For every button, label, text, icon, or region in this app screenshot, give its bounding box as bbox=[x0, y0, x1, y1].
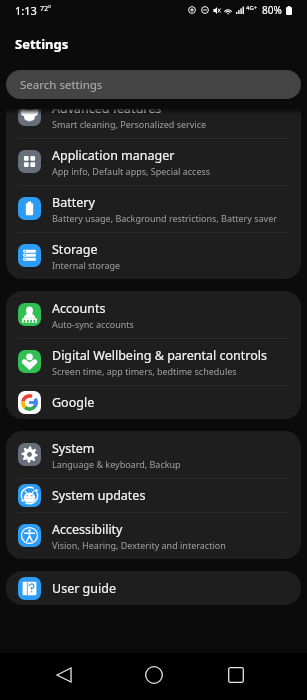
staticText: 4G+ bbox=[246, 4, 258, 12]
button[interactable]: Application manager bbox=[6, 138, 301, 185]
button[interactable]: Google bbox=[6, 385, 301, 419]
staticText: Digital Wellbeing & parental controls bbox=[52, 347, 268, 364]
staticText: Battery usage, Background restrictions, … bbox=[52, 212, 277, 224]
button[interactable]: Recent apps bbox=[214, 653, 258, 697]
staticText: Advanced features bbox=[52, 109, 162, 117]
button[interactable]: User guide bbox=[6, 571, 301, 605]
staticText: System updates bbox=[52, 487, 146, 504]
button[interactable]: Home bbox=[132, 653, 176, 697]
button[interactable]: Search settings bbox=[6, 70, 301, 99]
staticText: 80% bbox=[262, 3, 282, 17]
staticText: App info, Default apps, Special access bbox=[52, 165, 211, 177]
button[interactable]: Battery bbox=[6, 185, 301, 232]
button[interactable]: System bbox=[6, 431, 301, 478]
button[interactable]: Advanced features bbox=[6, 109, 301, 138]
staticText: Internal storage bbox=[52, 259, 121, 271]
staticText: Accounts bbox=[52, 300, 106, 317]
button[interactable]: Accessibility bbox=[6, 512, 301, 559]
staticText: Settings bbox=[15, 35, 69, 53]
staticText: 72° bbox=[40, 4, 52, 14]
staticText: 1:13 bbox=[15, 3, 37, 18]
staticText: Application manager bbox=[52, 147, 175, 164]
staticText: Auto-sync accounts bbox=[52, 318, 134, 330]
staticText: User guide bbox=[52, 580, 116, 597]
staticText: Search settings bbox=[20, 77, 103, 93]
button[interactable]: Storage bbox=[6, 232, 301, 279]
staticText: Storage bbox=[52, 241, 98, 258]
staticText: Language & keyboard, Backup bbox=[52, 458, 181, 470]
staticText: System bbox=[52, 440, 95, 457]
staticText: Vision, Hearing, Dexterity and interacti… bbox=[52, 539, 226, 551]
button[interactable]: Digital Wellbeing & parental controls bbox=[6, 338, 301, 385]
button[interactable]: System updates bbox=[6, 478, 301, 512]
staticText: Google bbox=[52, 394, 95, 411]
button[interactable]: Back bbox=[42, 653, 86, 697]
button[interactable]: Accounts bbox=[6, 291, 301, 338]
staticText: Screen time, app timers, bedtime schedul… bbox=[52, 365, 237, 377]
staticText: Battery bbox=[52, 194, 95, 211]
staticText: Smart cleaning, Personalized service bbox=[52, 118, 207, 130]
staticText: Accessibility bbox=[52, 521, 123, 538]
